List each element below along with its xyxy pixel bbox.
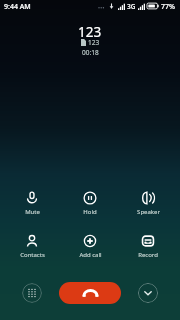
button[interactable]: Collapse	[138, 283, 158, 303]
staticText: 9:44 AM	[4, 2, 31, 12]
staticText: 123	[88, 38, 100, 47]
staticText: 123	[78, 23, 102, 41]
staticText: Record	[138, 251, 158, 259]
button[interactable]: Speaker	[119, 188, 177, 219]
staticText: 3G	[127, 2, 136, 11]
button[interactable]: Mute	[3, 188, 61, 219]
staticText: Contacts	[20, 251, 45, 259]
staticText: Speaker	[137, 208, 160, 216]
button[interactable]: End call	[59, 282, 121, 304]
staticText: Hold	[83, 208, 97, 216]
staticText: 00:18	[82, 48, 99, 57]
button[interactable]: Dialpad	[22, 283, 42, 303]
staticText: Add call	[79, 251, 102, 259]
button[interactable]: Record	[119, 231, 177, 262]
button[interactable]: Add call	[61, 231, 119, 262]
button[interactable]: Contacts	[3, 231, 61, 262]
button[interactable]: Hold	[61, 188, 119, 219]
staticText: Mute	[25, 208, 40, 216]
staticText: 77%	[161, 2, 175, 12]
